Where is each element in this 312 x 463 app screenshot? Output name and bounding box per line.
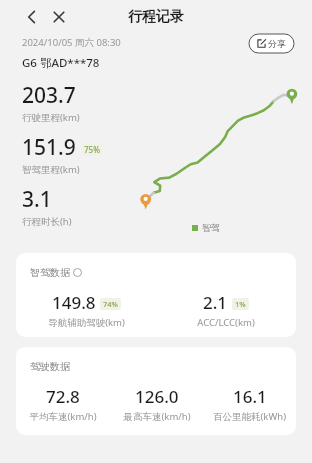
staticText: 3.1 <box>22 185 52 214</box>
button[interactable]: 分享 <box>249 34 294 53</box>
button[interactable]: Close <box>49 7 69 27</box>
staticText: 智驾里程(km) <box>22 163 80 176</box>
staticText: 导航辅助驾驶(km) <box>48 316 125 329</box>
staticText: 行驶里程(km) <box>22 111 80 124</box>
staticText: 72.8 <box>46 385 80 408</box>
staticText: 151.9 <box>22 133 76 162</box>
staticText: 平均车速(km/h) <box>29 410 97 423</box>
staticText: 74% <box>103 299 118 309</box>
staticText: 行程时长(h) <box>22 215 72 228</box>
staticText: 1% <box>235 299 246 309</box>
staticText: 75% <box>84 144 100 155</box>
other: Info <box>73 268 82 277</box>
staticText: 149.8 <box>52 291 96 314</box>
staticText: 16.1 <box>233 385 267 408</box>
button[interactable]: 智驾数据 <box>16 253 296 337</box>
staticText: 分享 <box>268 38 286 49</box>
staticText: 203.7 <box>22 81 76 110</box>
staticText: 行程记录 <box>128 8 184 26</box>
staticText: 百公里能耗(kWh) <box>213 410 286 423</box>
staticText: 智驾 <box>202 222 220 233</box>
staticText: ACC/LCC(km) <box>197 316 255 329</box>
staticText: 2024/10/05 周六 08:30 <box>22 36 121 49</box>
staticText: 驾驶数据 <box>30 360 70 373</box>
staticText: 智驾数据 <box>30 266 70 279</box>
staticText: 126.0 <box>135 385 179 408</box>
staticText: 2.1 <box>203 291 228 314</box>
staticText: G6 鄂AD***78 <box>22 55 100 71</box>
button[interactable]: Back <box>22 7 42 27</box>
button[interactable]: 驾驶数据 <box>16 347 296 435</box>
staticText: 最高车速(km/h) <box>123 410 191 423</box>
